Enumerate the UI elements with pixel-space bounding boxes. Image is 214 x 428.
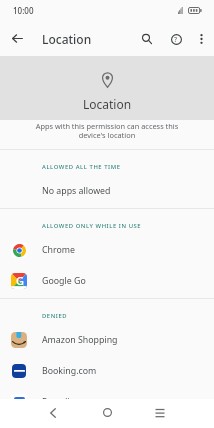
button[interactable]: Chrome xyxy=(0,234,214,265)
staticText: Apps with this permission can access thi… xyxy=(0,121,214,140)
button[interactable]: Search xyxy=(132,24,162,54)
button[interactable]: G xyxy=(0,265,214,296)
staticText: 10:00 xyxy=(13,5,34,16)
staticText: Location xyxy=(83,96,132,112)
staticText: Amazon Shopping xyxy=(42,334,118,346)
button[interactable]: More options xyxy=(186,24,214,54)
staticText: Location xyxy=(42,31,92,47)
staticText: ALLOWED ALL THE TIME xyxy=(42,163,121,171)
button[interactable]: Back xyxy=(2,23,32,53)
staticText: ALLOWED ONLY WHILE IN USE xyxy=(42,222,142,230)
staticText: Booking.com xyxy=(42,365,97,377)
button[interactable]: Home xyxy=(92,399,214,428)
staticText: Chrome xyxy=(42,244,75,256)
staticText: G xyxy=(16,273,24,288)
staticText: Google Go xyxy=(42,275,86,287)
button[interactable]: Booking.com xyxy=(0,355,214,386)
button[interactable]: No apps allowed xyxy=(0,175,214,206)
staticText: No apps allowed xyxy=(42,185,111,197)
staticText: DENIED xyxy=(42,312,68,320)
button[interactable]: Expedia xyxy=(0,386,214,417)
button[interactable]: Help xyxy=(161,24,191,54)
staticText: Expedia xyxy=(42,396,75,408)
staticText: ? xyxy=(174,35,178,45)
button[interactable]: Amazon Shopping xyxy=(0,324,214,355)
button[interactable]: Back xyxy=(38,399,214,428)
button[interactable]: Recent apps xyxy=(145,399,214,428)
